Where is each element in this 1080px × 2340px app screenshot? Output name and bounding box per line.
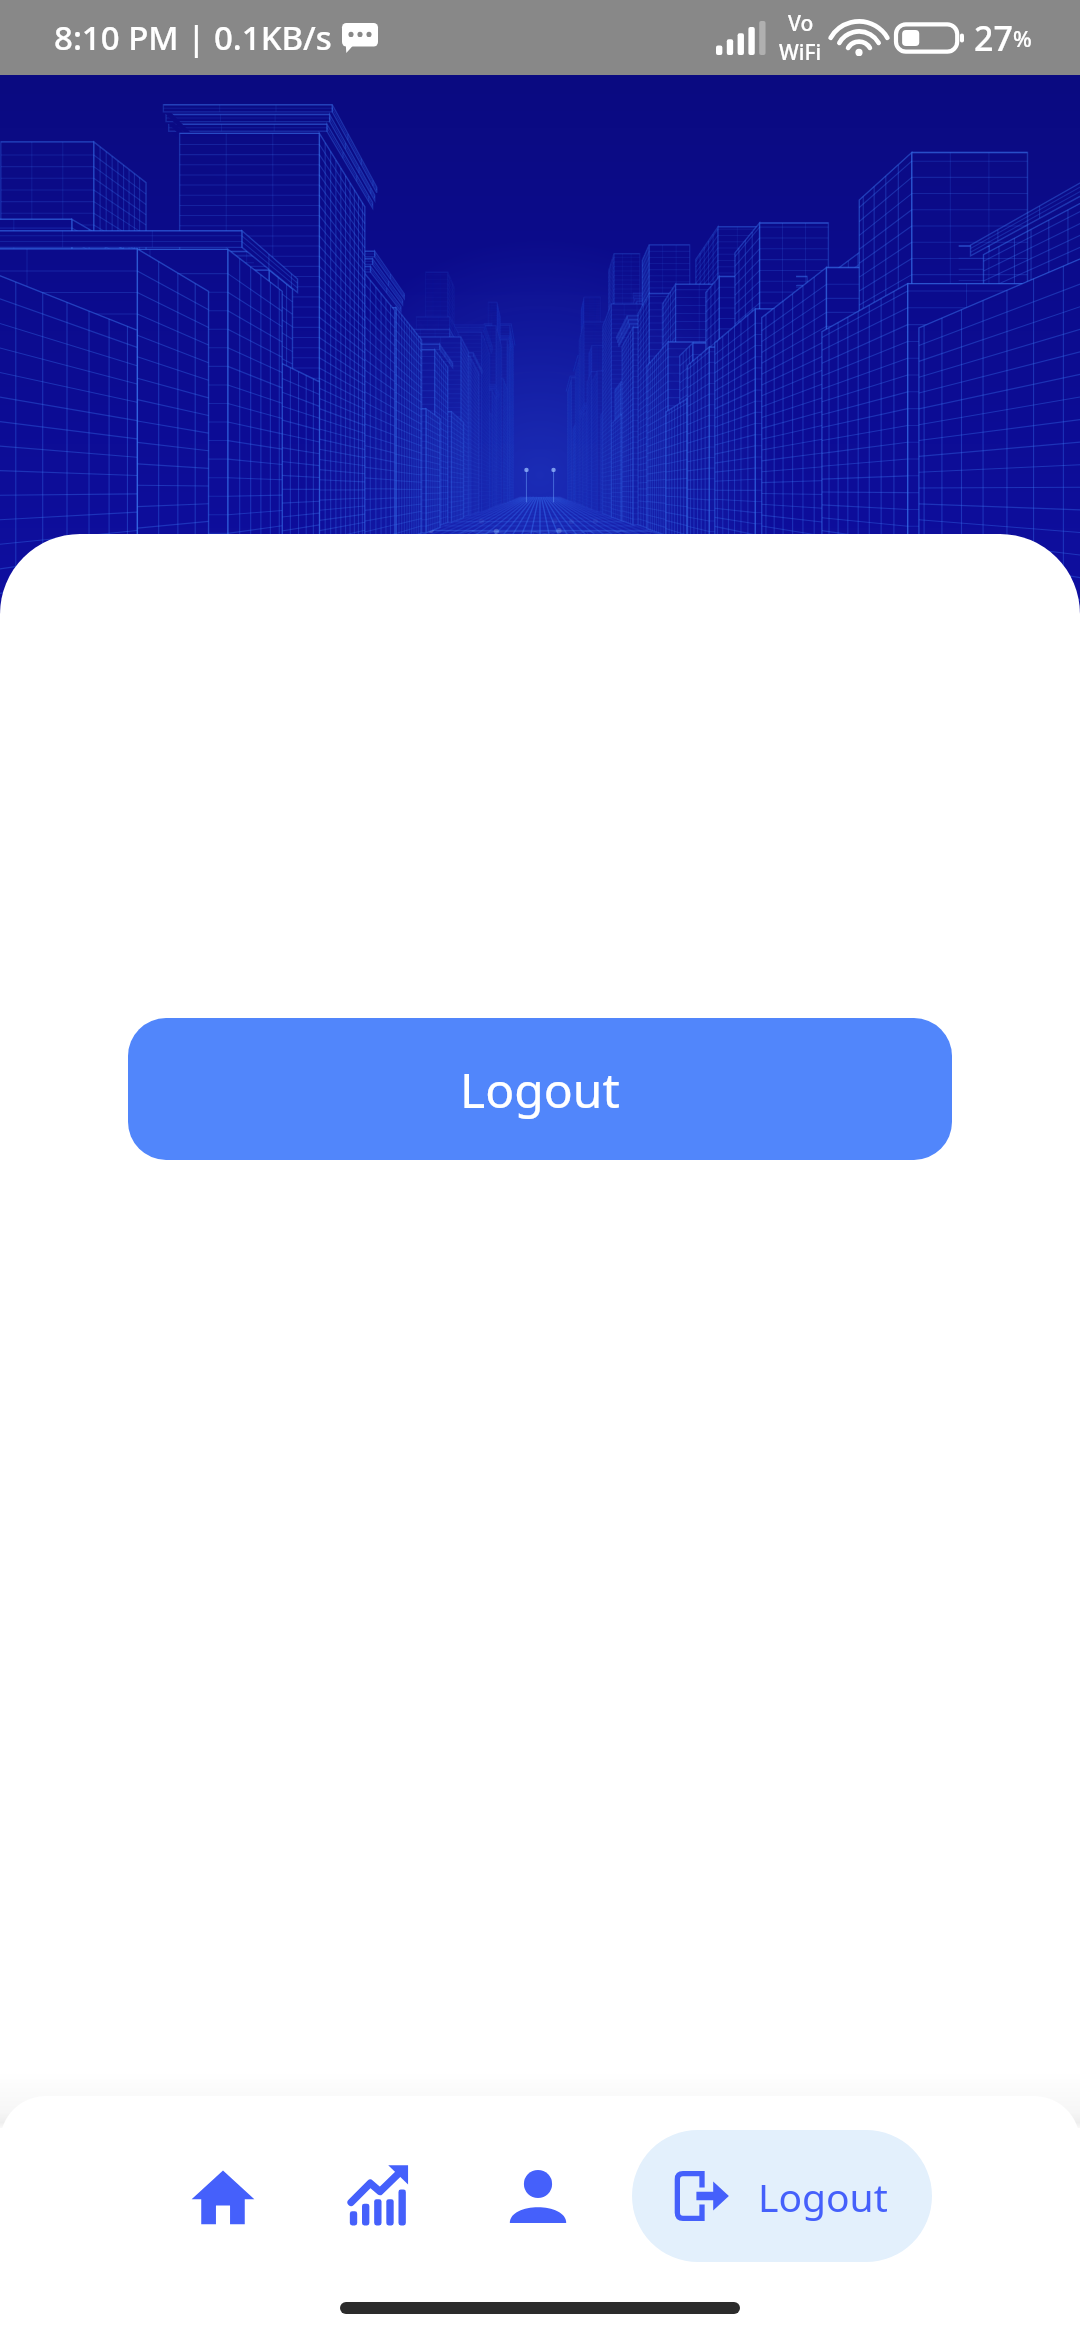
- button[interactable]: Home: [148, 2131, 298, 2261]
- button[interactable]: Logout: [128, 1018, 952, 1160]
- button[interactable]: Profile: [458, 2131, 618, 2261]
- staticText: 27: [974, 15, 1013, 61]
- staticText: WiFi: [779, 38, 822, 67]
- staticText: Logout: [460, 1057, 620, 1122]
- staticText: 8:10 PM | 0.1KB/s: [54, 15, 332, 60]
- staticText: Vo: [788, 9, 814, 38]
- staticText: %: [1013, 23, 1032, 53]
- button[interactable]: Analytics: [298, 2131, 458, 2261]
- button[interactable]: Logout: [632, 2130, 932, 2262]
- staticText: Logout: [758, 2170, 888, 2223]
